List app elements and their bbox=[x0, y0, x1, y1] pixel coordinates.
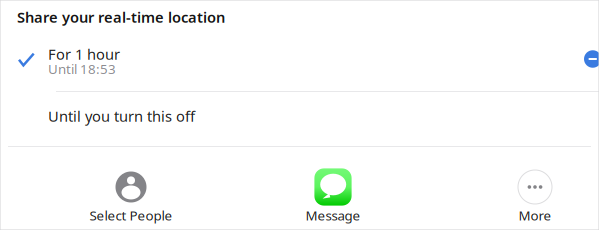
staticText: Share your real-time location bbox=[17, 7, 225, 27]
button[interactable]: More bbox=[434, 147, 599, 230]
staticText: More bbox=[518, 206, 551, 224]
staticText: Until 18:53 bbox=[48, 60, 116, 78]
button[interactable]: For 1 hour bbox=[0, 34, 599, 91]
button[interactable]: Select People bbox=[30, 147, 232, 230]
button[interactable]: Message bbox=[232, 147, 434, 230]
staticText: Select People bbox=[89, 206, 172, 224]
button[interactable]: Until you turn this off bbox=[0, 92, 599, 146]
staticText: For 1 hour bbox=[48, 44, 120, 64]
staticText: Message bbox=[305, 206, 360, 224]
staticText: Until you turn this off bbox=[48, 106, 195, 126]
